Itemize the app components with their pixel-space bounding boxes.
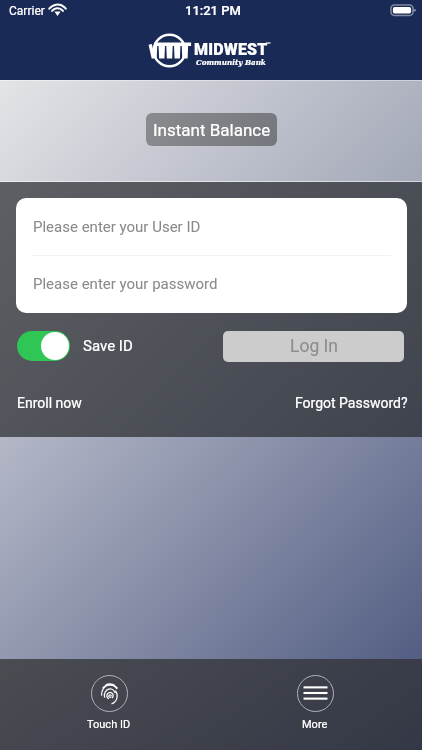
staticText: 11:21 PM xyxy=(185,3,241,18)
staticText: MIDWEST xyxy=(194,40,268,59)
staticText: Please enter your password xyxy=(33,275,218,293)
button[interactable]: Instant Balance xyxy=(146,113,277,146)
button[interactable]: Log In xyxy=(223,331,404,362)
staticText: Community Bank xyxy=(196,58,266,66)
button[interactable]: Save ID xyxy=(17,331,133,361)
staticText: Touch ID xyxy=(87,718,131,731)
staticText: Carrier xyxy=(9,4,45,18)
button[interactable]: Please enter your User ID xyxy=(16,198,407,255)
button[interactable]: Forgot Password? xyxy=(295,395,408,411)
button[interactable]: Touch ID login xyxy=(64,675,154,731)
staticText: Save ID xyxy=(83,337,133,355)
staticText: Please enter your User ID xyxy=(33,218,201,236)
button[interactable]: More options xyxy=(270,675,360,731)
staticText: More xyxy=(302,718,328,731)
button[interactable]: Please enter your password xyxy=(16,256,407,311)
staticText: Instant Balance xyxy=(153,120,271,140)
button[interactable]: Enroll now xyxy=(17,395,82,411)
staticText: Log In xyxy=(290,336,338,357)
